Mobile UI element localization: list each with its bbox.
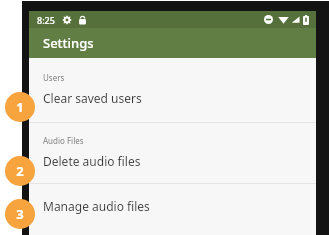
staticText: Delete audio files <box>43 153 141 169</box>
staticText: 8:25 <box>37 14 55 26</box>
staticText: 2 <box>16 162 24 180</box>
staticText: Audio Files <box>43 135 84 146</box>
button[interactable]: Step 2 <box>5 156 35 186</box>
staticText: Manage audio files <box>43 198 150 214</box>
button[interactable]: Clear saved users <box>29 84 316 112</box>
staticText: Settings <box>43 34 94 52</box>
staticText: Clear saved users <box>43 90 142 106</box>
button[interactable]: Step 1 <box>5 92 35 122</box>
button[interactable]: Manage audio files <box>29 192 316 220</box>
staticText: Users <box>43 72 65 83</box>
button[interactable]: Step 3 <box>5 199 35 229</box>
staticText: 3 <box>16 205 24 223</box>
staticText: 1 <box>16 98 24 116</box>
button[interactable]: Delete audio files <box>29 147 316 175</box>
